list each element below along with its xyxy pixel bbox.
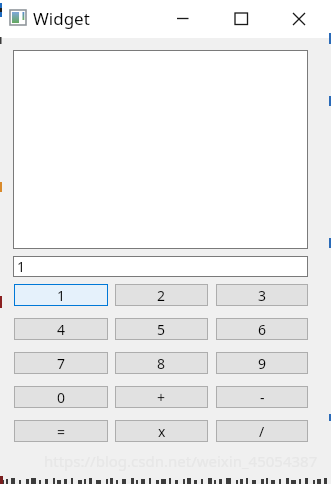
button[interactable]: 2: [115, 284, 208, 306]
button[interactable]: 5: [115, 318, 208, 340]
button[interactable]: 7: [14, 352, 108, 374]
button[interactable]: /: [216, 420, 308, 442]
button[interactable]: 8: [115, 352, 208, 374]
button[interactable]: 1: [13, 256, 308, 277]
button[interactable]: +: [115, 386, 208, 408]
staticText: 0: [57, 388, 66, 407]
staticText: 7: [57, 354, 66, 373]
button[interactable]: 3: [216, 284, 308, 306]
staticText: +: [157, 388, 166, 407]
staticText: /: [259, 422, 265, 441]
staticText: 3: [258, 286, 267, 305]
staticText: 5: [157, 320, 166, 339]
staticText: 9: [258, 354, 267, 373]
staticText: 4: [57, 320, 66, 339]
button[interactable]: 9: [216, 352, 308, 374]
staticText: 8: [157, 354, 166, 373]
button[interactable]: [167, 4, 199, 32]
staticText: =: [57, 422, 66, 441]
staticText: https://blog.csdn.net/weixin_45054387: [44, 451, 318, 471]
staticText: 1: [57, 286, 66, 305]
button[interactable]: [283, 4, 317, 32]
button[interactable]: 4: [14, 318, 108, 340]
button[interactable]: [226, 4, 258, 32]
button[interactable]: =: [14, 420, 108, 442]
button[interactable]: 1: [14, 284, 108, 306]
staticText: x: [158, 422, 166, 441]
staticText: 6: [258, 320, 267, 339]
staticText: Widget: [33, 7, 90, 30]
button[interactable]: x: [115, 420, 208, 442]
button[interactable]: 0: [14, 386, 108, 408]
button[interactable]: 6: [216, 318, 308, 340]
staticText: 2: [157, 286, 166, 305]
staticText: 1: [17, 257, 26, 276]
button[interactable]: -: [216, 386, 308, 408]
staticText: -: [260, 388, 265, 407]
